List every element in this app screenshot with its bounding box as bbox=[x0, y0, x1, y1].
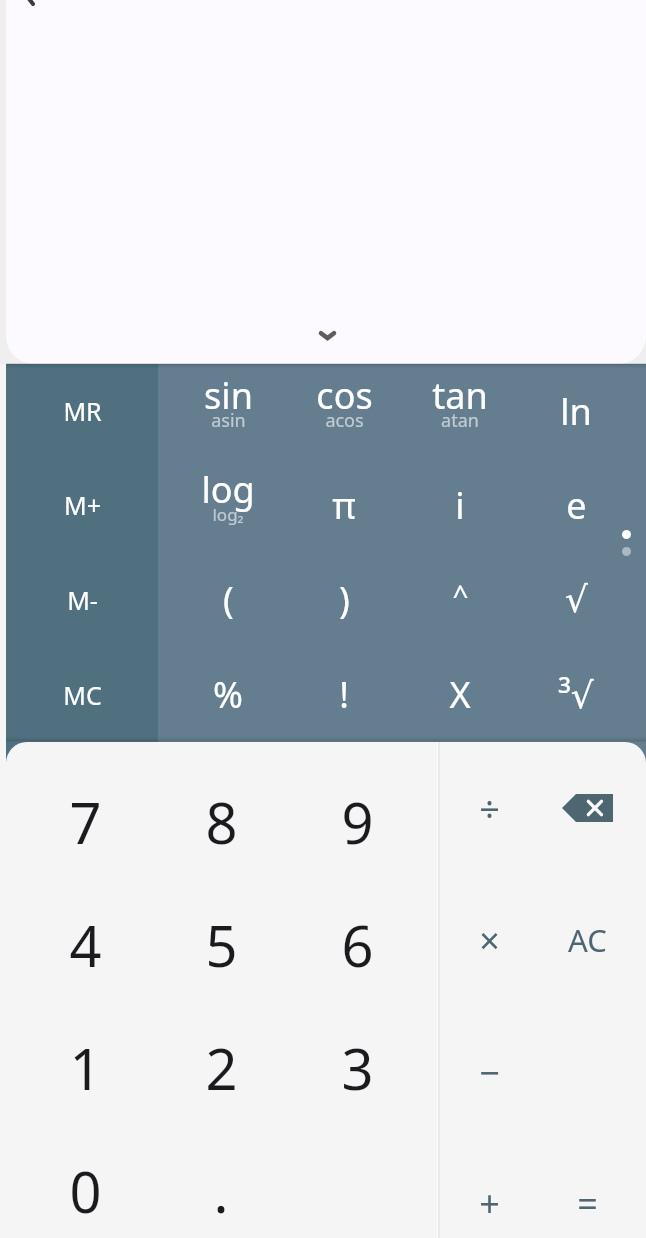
button[interactable]: ³√ bbox=[518, 647, 634, 742]
staticText: 7 bbox=[69, 784, 102, 860]
staticText: + bbox=[479, 1179, 500, 1228]
button[interactable]: ÷ bbox=[440, 742, 538, 874]
button[interactable]: 3 bbox=[289, 1006, 425, 1129]
staticText: 1 bbox=[69, 1030, 102, 1106]
button[interactable]: sin bbox=[170, 364, 286, 458]
button[interactable]: = bbox=[538, 1138, 636, 1238]
staticText: ^ bbox=[452, 575, 469, 613]
staticText: 4 bbox=[69, 907, 102, 983]
staticText: ln bbox=[560, 387, 592, 436]
button[interactable]: 7 bbox=[18, 760, 153, 883]
button[interactable]: M+ bbox=[6, 458, 158, 552]
staticText: 2 bbox=[205, 1030, 238, 1106]
staticText: √ bbox=[565, 579, 588, 621]
button[interactable]: 8 bbox=[153, 760, 289, 883]
staticText: atan bbox=[441, 408, 479, 433]
staticText: ³√ bbox=[558, 670, 594, 719]
staticText: % bbox=[213, 670, 243, 719]
button[interactable]: Backspace bbox=[538, 742, 636, 874]
staticText: 3 bbox=[341, 1030, 374, 1106]
button[interactable]: 9 bbox=[289, 760, 425, 883]
staticText: ÷ bbox=[479, 784, 500, 833]
button[interactable]: 0 bbox=[18, 1129, 153, 1238]
staticText: 0 bbox=[69, 1153, 102, 1229]
staticText: e bbox=[566, 481, 587, 530]
staticText: 6 bbox=[341, 907, 374, 983]
staticText: M- bbox=[67, 583, 98, 617]
button[interactable]: √ bbox=[518, 552, 634, 647]
staticText: i bbox=[455, 481, 465, 530]
button[interactable]: MR bbox=[6, 364, 158, 458]
staticText: X bbox=[449, 670, 471, 719]
staticText: cos bbox=[316, 371, 373, 420]
button[interactable]: 1 bbox=[18, 1006, 153, 1129]
staticText: MC bbox=[63, 678, 102, 712]
staticText: asin bbox=[211, 408, 246, 433]
button[interactable]: M- bbox=[6, 552, 158, 647]
button[interactable]: Collapse keypad bbox=[303, 311, 351, 359]
button[interactable]: ^ bbox=[402, 546, 518, 641]
staticText: AC bbox=[568, 919, 607, 961]
button[interactable]: ! bbox=[286, 647, 402, 742]
button[interactable]: π bbox=[286, 458, 402, 552]
staticText: sin bbox=[204, 371, 253, 420]
staticText: acos bbox=[325, 408, 364, 433]
staticText: ( bbox=[223, 575, 234, 624]
button[interactable]: e bbox=[518, 458, 634, 552]
staticText: 8 bbox=[205, 784, 238, 860]
button[interactable]: MC bbox=[6, 647, 158, 742]
button[interactable]: − bbox=[440, 1006, 538, 1138]
button[interactable]: X bbox=[402, 647, 518, 742]
staticText: log bbox=[201, 465, 255, 514]
staticText: 5 bbox=[205, 907, 238, 983]
button[interactable]: ) bbox=[286, 552, 402, 647]
button[interactable]: + bbox=[440, 1138, 538, 1238]
button[interactable]: % bbox=[170, 647, 286, 742]
staticText: = bbox=[577, 1179, 598, 1228]
staticText: M+ bbox=[64, 488, 101, 522]
staticText: 9 bbox=[341, 784, 374, 860]
button[interactable]: tan bbox=[402, 364, 518, 458]
button[interactable]: i bbox=[402, 458, 518, 552]
button[interactable]: AC bbox=[538, 874, 636, 1006]
button[interactable]: 6 bbox=[289, 883, 425, 1006]
button[interactable]: × bbox=[440, 874, 538, 1006]
button[interactable]: 2 bbox=[153, 1006, 289, 1129]
button[interactable]: log bbox=[170, 458, 286, 552]
button[interactable]: 5 bbox=[153, 883, 289, 1006]
staticText: MR bbox=[63, 394, 102, 428]
button[interactable]: . bbox=[153, 1129, 289, 1238]
staticText: π bbox=[332, 481, 356, 530]
staticText: ! bbox=[339, 670, 349, 719]
button[interactable]: ln bbox=[518, 364, 634, 458]
staticText: . bbox=[213, 1153, 229, 1229]
staticText: − bbox=[479, 1048, 500, 1097]
button[interactable]: ( bbox=[170, 552, 286, 647]
staticText: × bbox=[479, 916, 500, 965]
staticText: tan bbox=[432, 371, 488, 420]
staticText: ) bbox=[339, 575, 350, 624]
button[interactable]: cos bbox=[286, 364, 402, 458]
button[interactable]: 4 bbox=[18, 883, 153, 1006]
staticText: log₂ bbox=[212, 503, 244, 526]
